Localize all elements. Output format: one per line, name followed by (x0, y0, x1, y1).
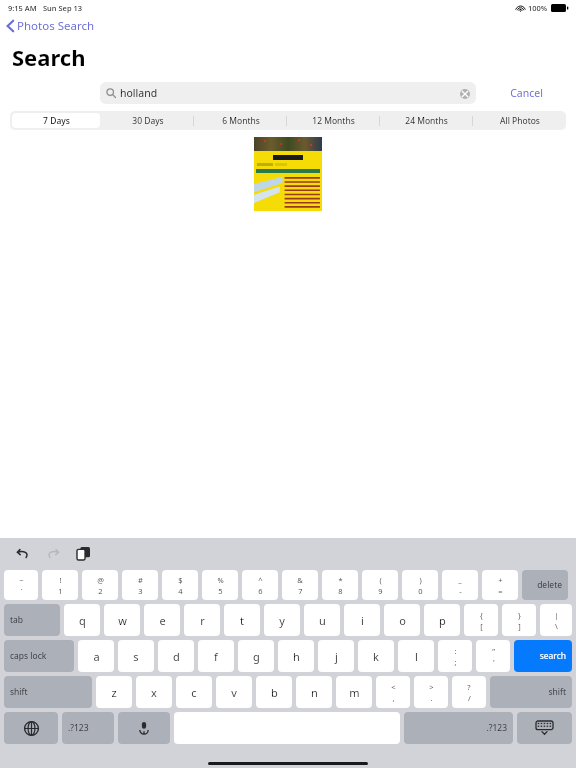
button[interactable]: w (104, 604, 140, 636)
button[interactable]: j (318, 640, 354, 672)
button[interactable]: ? (452, 676, 486, 708)
button[interactable]: n (296, 676, 332, 708)
staticText: Search (12, 42, 86, 72)
button[interactable]: shift (490, 676, 572, 708)
staticText: k (373, 649, 379, 664)
button[interactable]: 30 Days (104, 113, 192, 128)
button[interactable]: shift (4, 676, 92, 708)
button[interactable]: : (438, 640, 472, 672)
staticText: , (392, 693, 395, 703)
button[interactable]: s (118, 640, 154, 672)
staticText: e (159, 613, 166, 628)
button[interactable]: $ (162, 570, 198, 600)
button[interactable]: k (358, 640, 394, 672)
button[interactable]: v (216, 676, 252, 708)
button[interactable]: > (414, 676, 448, 708)
staticText: w (118, 613, 127, 628)
staticText: = (498, 586, 503, 596)
button[interactable]: x (136, 676, 172, 708)
button[interactable]: ) (402, 570, 438, 600)
button[interactable]: 6 Months (196, 113, 285, 128)
button[interactable]: Hide keyboard (517, 712, 572, 744)
button[interactable]: q (64, 604, 100, 636)
button[interactable]: tab (4, 604, 60, 636)
button[interactable]: Undo (12, 542, 34, 564)
button[interactable]: e (144, 604, 180, 636)
button[interactable]: # (122, 570, 158, 600)
button[interactable]: 7 Days (12, 113, 100, 128)
button[interactable]: h (278, 640, 314, 672)
button[interactable]: _ (442, 570, 478, 600)
button[interactable]: ~ (4, 570, 38, 600)
button[interactable]: 24 Months (382, 113, 471, 128)
button[interactable]: + (482, 570, 518, 600)
staticText: All Photos (500, 115, 540, 127)
button[interactable]: ! (42, 570, 78, 600)
button[interactable]: Cancel (476, 82, 576, 104)
staticText: ] (518, 621, 521, 631)
button[interactable]: z (96, 676, 132, 708)
staticText: i (361, 613, 364, 628)
button[interactable]: 12 Months (289, 113, 378, 128)
button[interactable]: .?123 (404, 712, 513, 744)
button[interactable]: u (304, 604, 340, 636)
button[interactable]: .?123 (62, 712, 114, 744)
button[interactable]: * (322, 570, 358, 600)
button[interactable]: Change keyboard (4, 712, 58, 744)
button[interactable]: Redo (42, 542, 64, 564)
staticText: s (133, 649, 139, 664)
staticText: ! (59, 575, 62, 585)
button[interactable]: } (502, 604, 536, 636)
button[interactable]: search (514, 640, 572, 672)
button[interactable]: f (198, 640, 234, 672)
button[interactable]: < (376, 676, 410, 708)
button[interactable]: @ (82, 570, 118, 600)
staticText: [ (480, 621, 483, 631)
button[interactable]: Photo result (254, 137, 322, 211)
staticText: : (454, 646, 457, 656)
button[interactable]: holland (100, 82, 476, 104)
button[interactable]: Clear text (459, 88, 470, 99)
button[interactable]: % (202, 570, 238, 600)
button[interactable]: o (384, 604, 420, 636)
staticText: ? (467, 682, 471, 692)
button[interactable]: b (256, 676, 292, 708)
button[interactable]: t (224, 604, 260, 636)
staticText: v (231, 685, 237, 700)
staticText: r (200, 613, 205, 628)
staticText: z (111, 685, 117, 700)
staticText: ’ (493, 657, 495, 667)
button[interactable]: m (336, 676, 372, 708)
button[interactable]: g (238, 640, 274, 672)
button[interactable]: All Photos (475, 113, 564, 128)
button[interactable]: i (344, 604, 380, 636)
staticText: 7 Days (43, 115, 70, 127)
button[interactable]: Dictate (118, 712, 170, 744)
button[interactable]: ^ (242, 570, 278, 600)
staticText: h (293, 649, 300, 664)
staticText: _ (458, 575, 462, 585)
button[interactable]: delete (522, 570, 568, 600)
staticText: ) (419, 575, 422, 585)
staticText: 8 (338, 586, 343, 596)
staticText: + (498, 575, 503, 585)
button[interactable]: a (78, 640, 114, 672)
staticText: 1 (58, 586, 63, 596)
button[interactable]: | (540, 604, 572, 636)
button[interactable]: caps lock (4, 640, 74, 672)
button[interactable]: r (184, 604, 220, 636)
button[interactable]: { (464, 604, 498, 636)
button[interactable]: l (398, 640, 434, 672)
button[interactable]: c (176, 676, 212, 708)
button[interactable]: & (282, 570, 318, 600)
staticText: 0 (418, 586, 423, 596)
button[interactable]: p (424, 604, 460, 636)
button[interactable]: Photos Search (6, 16, 95, 36)
button[interactable]: ” (476, 640, 510, 672)
button[interactable]: Paste (72, 542, 94, 564)
staticText: # (138, 575, 143, 585)
button[interactable]: d (158, 640, 194, 672)
button[interactable]: y (264, 604, 300, 636)
button[interactable]: ( (362, 570, 398, 600)
